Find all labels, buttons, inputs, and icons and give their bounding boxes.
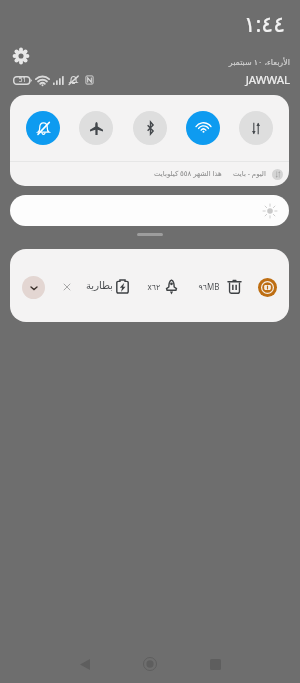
- button[interactable]: Bluetooth: [133, 111, 167, 145]
- button[interactable]: Expand: [22, 276, 45, 299]
- staticText: JAWWAL: [220, 72, 290, 88]
- button[interactable]: Brightness: [10, 195, 289, 226]
- staticText: الأربعاء، ١٠ سبتمبر: [190, 56, 290, 67]
- staticText: بطارية: [86, 280, 112, 292]
- button[interactable]: Airplane mode: [79, 111, 113, 145]
- button[interactable]: Data usage: [272, 169, 283, 180]
- button[interactable]: Do not disturb: [26, 111, 60, 145]
- staticText: ١:٤٤: [204, 8, 285, 38]
- staticText: 51: [13, 75, 32, 84]
- button[interactable]: Mobile data: [239, 111, 273, 145]
- button[interactable]: Expand: [10, 249, 289, 322]
- staticText: هذا الشهر ٥٥٨ كيلوبايت: [154, 169, 222, 179]
- staticText: اليوم - بايت: [233, 169, 266, 179]
- button[interactable]: Settings: [13, 48, 29, 64]
- staticText: x٦٢: [146, 281, 162, 292]
- button[interactable]: Wi-Fi: [186, 111, 220, 145]
- staticText: ٩٦MB: [196, 281, 222, 292]
- button[interactable]: Dismiss: [59, 279, 75, 295]
- button[interactable]: Recents: [193, 642, 237, 683]
